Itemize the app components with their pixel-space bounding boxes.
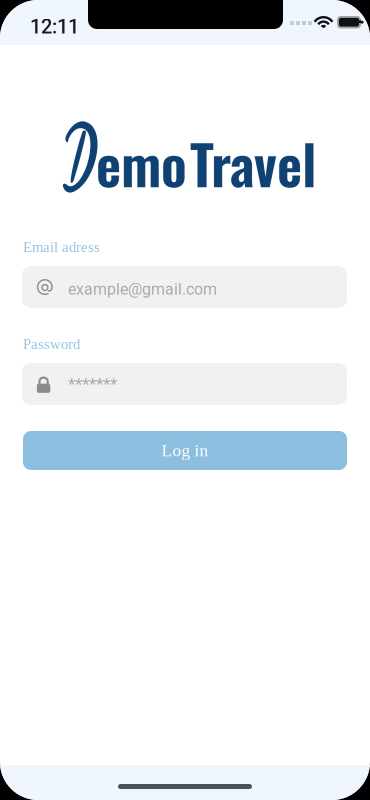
staticText: Log in <box>161 441 208 460</box>
staticText: 12:11 <box>30 15 79 38</box>
staticText: emo Travel <box>96 122 316 203</box>
button[interactable]: Log in <box>23 431 347 470</box>
staticText: Password <box>23 336 80 352</box>
staticText: ******* <box>68 374 117 394</box>
staticText: example@gmail.com <box>68 280 217 299</box>
staticText: Email adress <box>23 239 100 255</box>
